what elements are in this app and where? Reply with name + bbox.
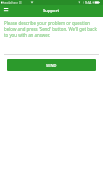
staticText: SEND [46,63,57,68]
staticText: vodafone IE [4,1,22,5]
button[interactable]: Open navigation menu [0,5,12,17]
staticText: 9:54 [85,1,92,5]
staticText: Support [43,8,60,14]
button[interactable]: SEND [7,59,96,71]
staticText: Please describe your problem or question… [4,20,99,38]
